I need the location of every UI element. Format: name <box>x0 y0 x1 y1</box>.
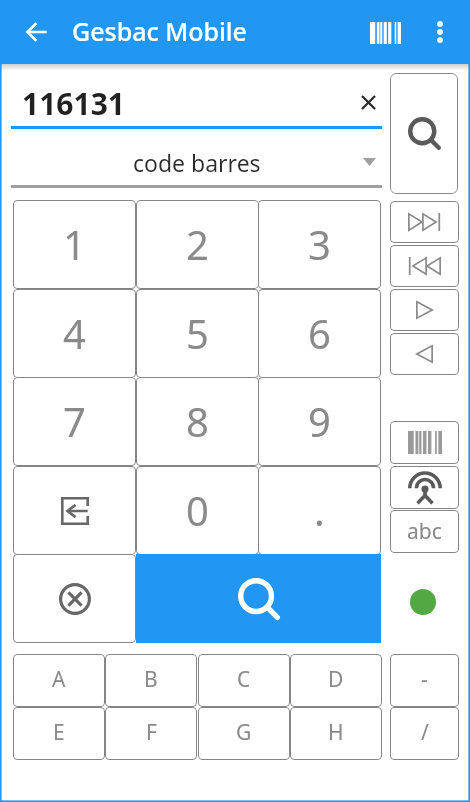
button[interactable]: Back <box>17 12 57 52</box>
button[interactable]: 0 <box>136 466 259 555</box>
button[interactable]: code barres <box>11 132 382 186</box>
staticText: / <box>421 718 429 747</box>
button[interactable]: Search <box>136 554 381 643</box>
button[interactable]: G <box>198 707 290 760</box>
staticText: A <box>52 665 66 694</box>
button[interactable]: Status <box>410 589 436 615</box>
button[interactable]: E <box>13 707 105 760</box>
button[interactable]: - <box>390 654 459 707</box>
staticText: . <box>314 483 325 537</box>
staticText: abc <box>407 517 442 546</box>
button[interactable]: Barcode mode <box>390 421 459 464</box>
button[interactable]: Next <box>390 201 459 243</box>
button[interactable]: C <box>198 654 290 707</box>
staticText: Gesbac Mobile <box>72 14 247 48</box>
staticText: 116131 <box>22 83 125 124</box>
button[interactable]: . <box>258 466 381 555</box>
button[interactable]: Search <box>390 73 458 194</box>
staticText: 5 <box>186 306 209 360</box>
button[interactable]: Enter <box>13 466 136 555</box>
button[interactable]: 8 <box>136 377 259 466</box>
button[interactable]: / <box>390 707 459 760</box>
button[interactable]: Clear <box>350 84 386 120</box>
staticText: 6 <box>308 306 331 360</box>
button[interactable]: A <box>13 654 105 707</box>
button[interactable]: Play <box>390 289 459 331</box>
button[interactable]: Clear entry <box>13 554 136 643</box>
staticText: 0 <box>186 483 209 537</box>
staticText: 1 <box>63 217 86 271</box>
button[interactable]: 4 <box>13 289 136 378</box>
button[interactable]: 9 <box>258 377 381 466</box>
staticText: code barres <box>133 147 261 178</box>
staticText: 3 <box>308 217 331 271</box>
button[interactable]: D <box>290 654 382 707</box>
staticText: B <box>144 665 158 694</box>
staticText: F <box>146 718 157 747</box>
staticText: 8 <box>186 394 209 448</box>
staticText: G <box>236 718 252 747</box>
button[interactable]: Scan barcode <box>364 12 406 54</box>
staticText: 7 <box>63 394 86 448</box>
button[interactable]: 3 <box>258 200 381 289</box>
staticText: 9 <box>308 394 331 448</box>
button[interactable]: RFID mode <box>390 466 459 509</box>
button[interactable]: Back <box>390 333 459 375</box>
button[interactable]: 2 <box>136 200 259 289</box>
staticText: C <box>237 665 251 694</box>
staticText: 2 <box>186 217 209 271</box>
button[interactable]: 7 <box>13 377 136 466</box>
staticText: D <box>328 665 344 694</box>
staticText: 4 <box>63 306 86 360</box>
button[interactable]: abc <box>390 510 459 553</box>
button[interactable]: 6 <box>258 289 381 378</box>
button[interactable]: More options <box>420 12 460 52</box>
button[interactable]: B <box>105 654 197 707</box>
button[interactable]: F <box>105 707 197 760</box>
staticText: - <box>421 665 428 694</box>
button[interactable]: 5 <box>136 289 259 378</box>
staticText: E <box>53 718 65 747</box>
button[interactable]: 1 <box>13 200 136 289</box>
button[interactable]: H <box>290 707 382 760</box>
staticText: H <box>328 718 344 747</box>
button[interactable]: Previous <box>390 245 459 287</box>
